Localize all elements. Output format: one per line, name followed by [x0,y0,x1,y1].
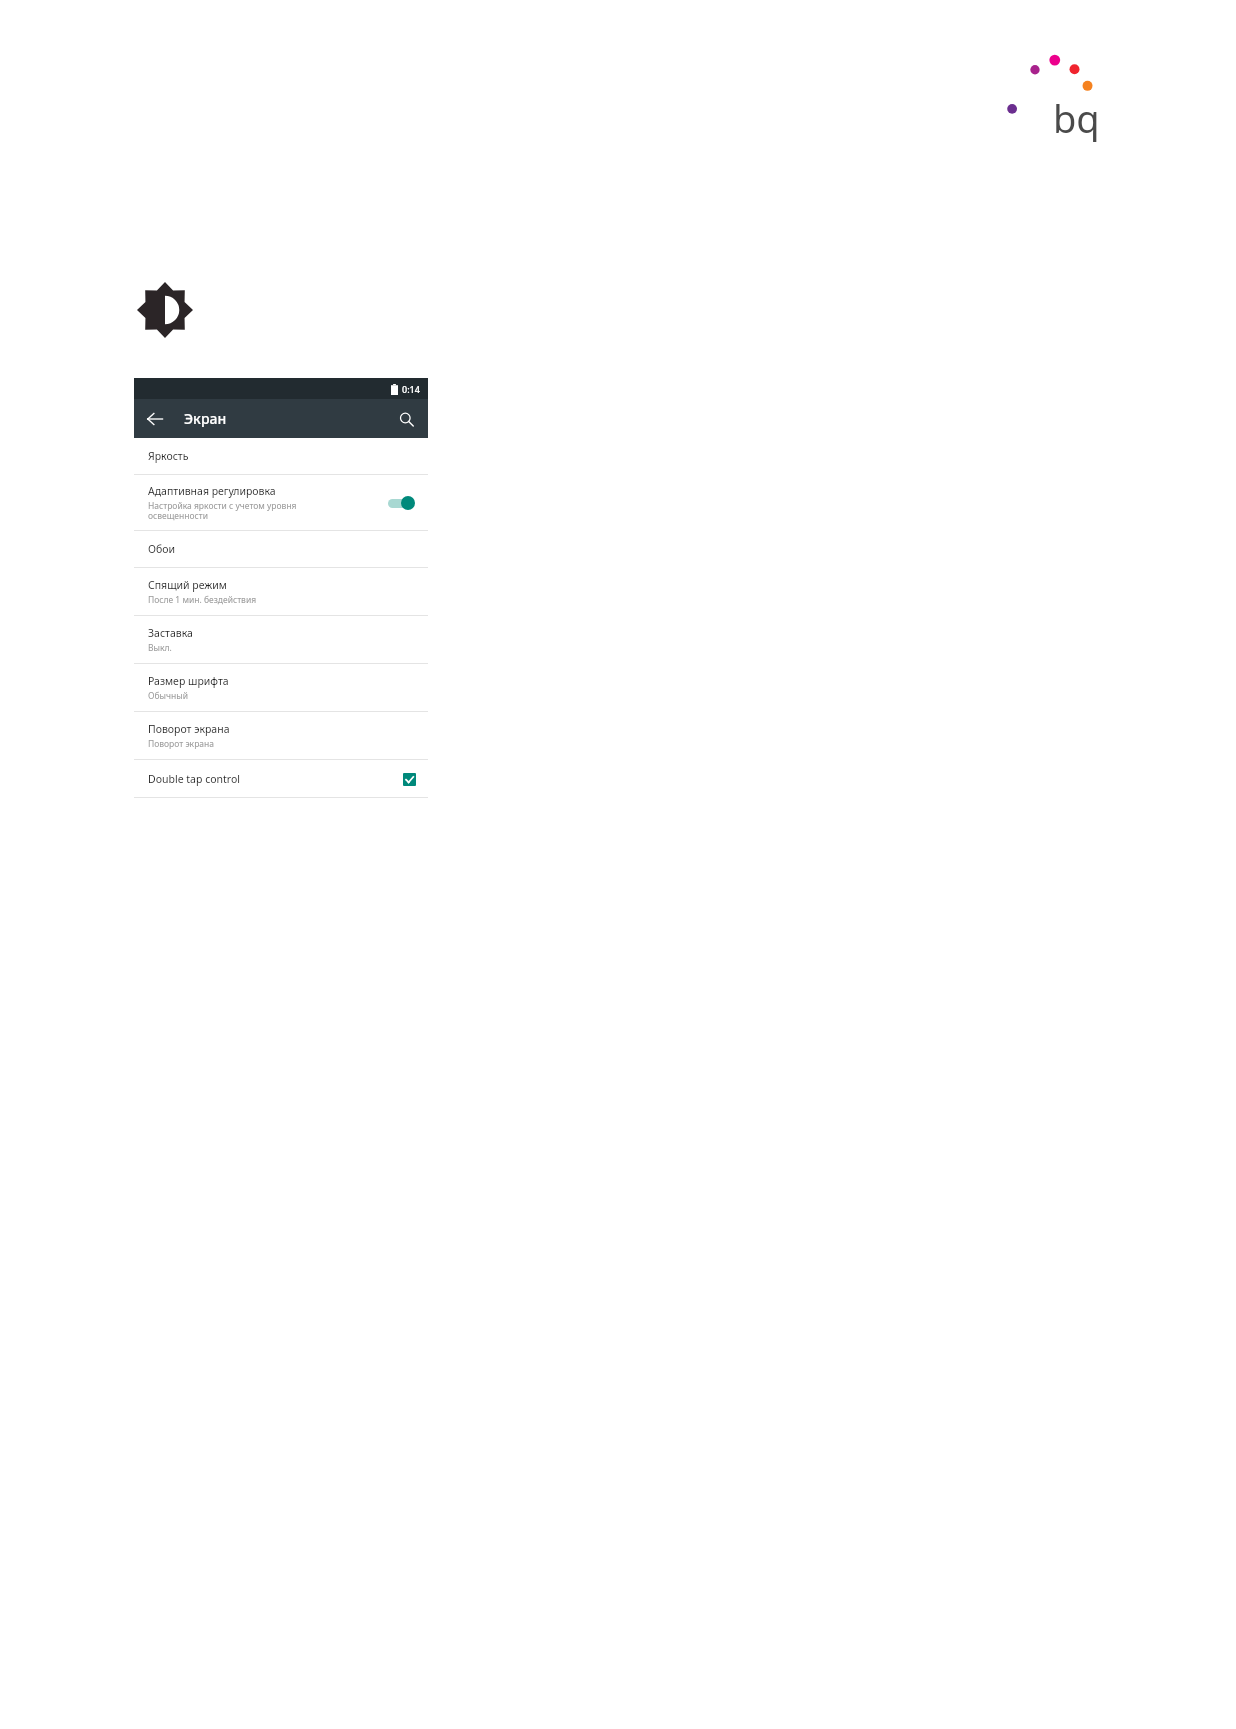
button[interactable]: Размер шрифта [134,664,428,711]
staticText: Заставка [148,626,193,640]
button[interactable]: Яркость [134,438,428,474]
staticText: Размер шрифта [148,674,229,688]
button[interactable]: Спящий режим [134,568,428,615]
staticText: bq [1053,92,1100,144]
staticText: Выкл. [148,642,172,654]
button[interactable]: Double tap control [134,760,428,797]
button[interactable]: Поворот экрана [134,712,428,759]
staticText: Яркость [148,449,189,463]
button[interactable]: Double tap control checkbox [401,771,417,787]
button[interactable]: Search [389,402,423,436]
staticText: Поворот экрана [148,722,230,736]
staticText: Обычный [148,690,188,702]
staticText: Обои [148,542,176,556]
button[interactable]: Адаптивная регулировка [134,475,428,530]
staticText: Адаптивная регулировка [148,484,276,498]
button[interactable]: Back [137,401,173,437]
staticText: После 1 мин. бездействия [148,594,257,606]
staticText: Экран [184,409,227,428]
staticText: Double tap control [148,772,241,786]
button[interactable]: Заставка [134,616,428,663]
button[interactable]: Adaptive brightness toggle [386,494,417,512]
staticText: Настройка яркости с учетом уровня освеще… [148,500,297,522]
staticText: Спящий режим [148,578,227,592]
button[interactable]: Обои [134,531,428,567]
staticText: 0:14 [402,383,420,395]
staticText: Поворот экрана [148,738,214,750]
